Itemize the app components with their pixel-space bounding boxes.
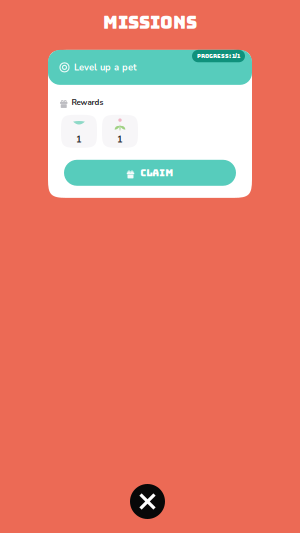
- staticText: MISSIONS: [103, 11, 197, 34]
- button[interactable]: CLAIM: [64, 160, 236, 186]
- staticText: Level up a pet: [74, 61, 137, 74]
- staticText: CLAIM: [140, 167, 173, 179]
- staticText: PROGRESS: 1/1: [197, 52, 240, 60]
- button[interactable]: Close: [130, 484, 165, 519]
- staticText: 1: [117, 133, 123, 146]
- staticText: Rewards: [71, 97, 103, 108]
- staticText: 1: [76, 133, 82, 146]
